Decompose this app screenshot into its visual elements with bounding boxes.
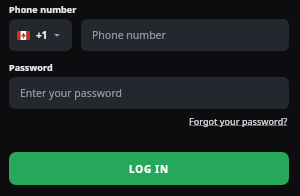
button[interactable]: Enter your password: [9, 77, 289, 109]
staticText: Password: [9, 61, 53, 73]
staticText: LOG IN: [129, 162, 169, 176]
button[interactable]: LOG IN: [9, 152, 289, 185]
button[interactable]: Forgot your password?: [188, 114, 289, 128]
staticText: Phone number: [92, 28, 166, 42]
button[interactable]: Select country calling code: [9, 19, 72, 51]
staticText: +1: [36, 28, 48, 42]
staticText: Forgot your password?: [189, 115, 288, 127]
button[interactable]: Phone number: [81, 19, 289, 51]
staticText: Enter your password: [20, 86, 122, 100]
staticText: Phone number: [9, 3, 77, 15]
